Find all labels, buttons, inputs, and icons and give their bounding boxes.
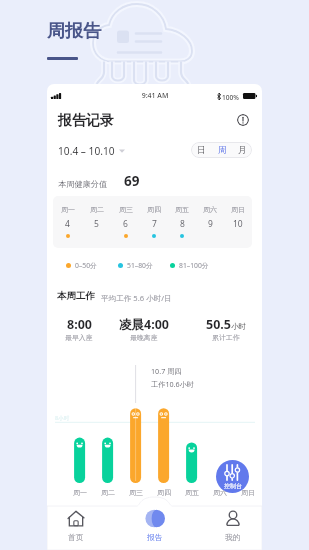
staticText: 51–80分 (127, 261, 153, 270)
staticText: 10 (233, 218, 243, 230)
button[interactable]: 报告 (127, 506, 183, 550)
staticText: 50.5 (206, 316, 231, 333)
staticText: 周四 (147, 205, 161, 214)
staticText: 周日 (188, 488, 262, 497)
button[interactable]: 周二 (82, 196, 111, 248)
staticText: 周三 (76, 488, 196, 497)
staticText: 周五 (132, 488, 252, 497)
staticText: 平均工作 5.6 小时/日 (101, 293, 172, 303)
button[interactable]: 周 (212, 142, 232, 158)
staticText: 周二 (90, 205, 104, 214)
staticText: 6 (123, 218, 128, 230)
staticText: 周二 (48, 488, 168, 497)
staticText: 周报告 (47, 20, 101, 43)
staticText: 小时 (231, 322, 247, 332)
staticText: 最早入座 (65, 333, 93, 342)
staticText: 我的 (225, 532, 241, 542)
button[interactable]: 周四 (140, 196, 168, 248)
staticText: 7 (152, 218, 157, 230)
staticText: 周四 (104, 488, 224, 497)
button[interactable]: 我的 (205, 506, 261, 550)
button[interactable]: 日 (191, 142, 212, 158)
staticText: 日 (197, 145, 206, 156)
staticText: 100% (222, 93, 239, 102)
staticText: 周日 (231, 205, 245, 214)
staticText: 周五 (175, 205, 189, 214)
staticText: 8:00 (67, 316, 92, 333)
staticText: 8小时 (55, 414, 70, 422)
button[interactable]: 周日 (224, 196, 252, 248)
staticText: 累计工作 (212, 333, 240, 342)
staticText: 月 (238, 145, 247, 156)
button[interactable]: 周三 (111, 196, 140, 248)
staticText: 周六 (203, 205, 217, 214)
button[interactable]: 控制台 (216, 460, 249, 493)
staticText: 周一 (47, 488, 140, 497)
staticText: 凌晨4:00 (119, 316, 169, 333)
staticText: 周 (218, 145, 227, 156)
staticText: 周六 (160, 488, 262, 497)
staticText: 本周健康分值 (58, 179, 108, 189)
staticText: 4 (65, 218, 70, 230)
button[interactable]: 10.4 – 10.10 (58, 144, 125, 158)
staticText: 周一 (61, 205, 75, 214)
staticText: 69 (124, 172, 140, 190)
staticText: 81–100分 (179, 261, 209, 270)
staticText: 0–50分 (75, 261, 97, 270)
button[interactable]: 周六 (196, 196, 224, 248)
staticText: 报告记录 (58, 112, 114, 130)
staticText: 报告 (147, 532, 163, 542)
button[interactable]: 周五 (168, 196, 196, 248)
staticText: 周三 (119, 205, 133, 214)
button[interactable]: 周一 (53, 196, 82, 248)
staticText: 本周工作 (57, 290, 95, 302)
staticText: 9:41 AM (125, 91, 185, 101)
button[interactable]: 首页 (48, 506, 104, 550)
staticText: 10.7 周四 (151, 366, 182, 376)
staticText: 最晚离座 (130, 333, 158, 342)
button[interactable]: 月 (232, 142, 252, 158)
staticText: 9 (208, 218, 213, 230)
staticText: 工作10.6小时 (151, 379, 195, 389)
staticText: 控制台 (224, 482, 242, 490)
staticText: 5 (94, 218, 99, 230)
button[interactable]: Info (237, 114, 249, 126)
staticText: 10.4 – 10.10 (58, 144, 115, 158)
staticText: 8 (180, 218, 185, 230)
staticText: 首页 (68, 532, 84, 542)
